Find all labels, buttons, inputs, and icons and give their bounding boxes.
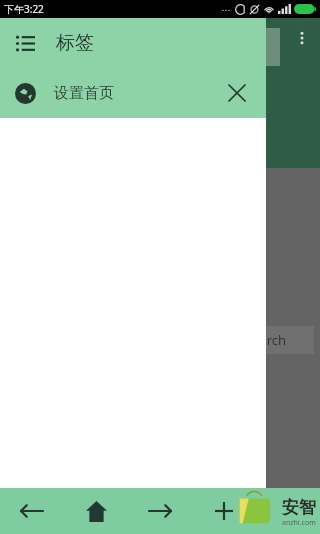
staticText: 设置首页 [54, 84, 114, 103]
button[interactable]: Home [64, 488, 128, 534]
button[interactable]: Bookmarks list [8, 26, 42, 60]
button[interactable]: More options [288, 24, 316, 52]
button[interactable]: Close [220, 76, 254, 110]
staticText: 安智 [282, 497, 316, 518]
button[interactable]: Back [0, 488, 64, 534]
button[interactable]: New tab [192, 488, 256, 534]
button[interactable]: earch [252, 326, 314, 354]
staticText: anzhi.com [282, 518, 316, 528]
button[interactable]: Forward [128, 488, 192, 534]
staticText: 标签 [56, 31, 94, 55]
button[interactable]: 设置首页 [0, 68, 266, 118]
staticText: earch [252, 331, 287, 349]
staticText: 下午3:22 [4, 2, 44, 16]
